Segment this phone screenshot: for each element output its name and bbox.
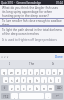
staticText: p [59,70,62,75]
button[interactable]: a [3,77,8,83]
button[interactable]: Done [55,55,63,59]
button[interactable]: b [34,85,40,91]
staticText: r [24,70,26,75]
staticText: 01:24 [56,1,63,5]
staticText: i [48,70,49,75]
button[interactable]: To lure smaller fish close enough to swa… [0,19,64,25]
staticText: y [36,70,38,75]
button[interactable]: w [8,69,14,75]
button[interactable]: ↵ [52,93,63,99]
staticText: e [17,70,19,75]
staticText: . [48,94,49,99]
staticText: g [29,78,32,83]
staticText: l [58,78,59,83]
staticText: ∧ ∨ ∨ [1,55,9,59]
button[interactable]: p [58,69,63,75]
button[interactable]: i [46,69,51,75]
button[interactable]: t [28,69,33,75]
button[interactable]: u [40,69,45,75]
button[interactable]: v [27,85,33,91]
button[interactable]: n [41,85,47,91]
staticText: s [11,78,13,83]
button[interactable]: It is used to frighten off larger predat… [0,38,64,46]
button[interactable]: To light the path ahead in the total dar… [0,27,64,38]
button[interactable]: z [9,85,14,91]
staticText: d [16,78,19,83]
button[interactable]: o [52,69,57,75]
staticText: f [23,78,25,83]
button[interactable]: , [11,93,18,99]
staticText: ?12 [3,94,9,99]
staticText: o [53,70,56,75]
staticText: w [10,70,13,75]
button[interactable]: g [27,77,33,83]
button[interactable]: The [29,62,35,66]
staticText: k [50,78,52,83]
button[interactable]: It [52,62,55,66]
button[interactable]: q [1,69,7,75]
staticText: ↵ [56,94,59,98]
button[interactable]: m [48,85,54,91]
button[interactable]: y [34,69,39,75]
button[interactable]: e [15,69,21,75]
staticText: h [36,78,39,83]
staticText: It is used to frighten off larger predat… [2,38,57,42]
button[interactable]: I [9,62,11,66]
button[interactable]: Quiz 3/10 · General knowledge [0,0,64,5]
staticText: , [14,94,15,99]
staticText: b [36,86,39,91]
staticText: What do you think the Angler fish uses i… [2,6,62,18]
staticText: n [43,86,46,91]
staticText: x [17,86,19,91]
staticText: ⌦ [57,86,62,90]
staticText: ⇧ [3,86,6,90]
staticText: v [29,86,31,91]
staticText: q [3,70,6,75]
staticText: u [41,70,44,75]
button[interactable]: x [15,85,20,91]
staticText: m [49,86,53,91]
button[interactable]: ⌦ [55,85,63,91]
button[interactable]: d [15,77,20,83]
button[interactable]: s [9,77,14,83]
button[interactable]: ⇧ [1,85,8,91]
button[interactable]: c [21,85,26,91]
staticText: To lure smaller fish close enough to swa… [2,19,62,25]
button[interactable]: . [45,93,51,99]
staticText: j [44,78,45,83]
staticText: To light the path ahead in the total dar… [2,28,62,36]
staticText: t [30,70,32,75]
button[interactable]: l [55,77,61,83]
button[interactable]: k [48,77,54,83]
staticText: c [23,86,25,91]
staticText: a [5,78,7,83]
staticText: z [11,86,13,91]
button[interactable]: j [41,77,47,83]
button[interactable]: h [34,77,40,83]
button[interactable]: r [22,69,27,75]
staticText: Quiz 3/10 · General knowledge [1,1,41,5]
button[interactable]: f [21,77,26,83]
button[interactable]: ?12 [1,93,10,99]
